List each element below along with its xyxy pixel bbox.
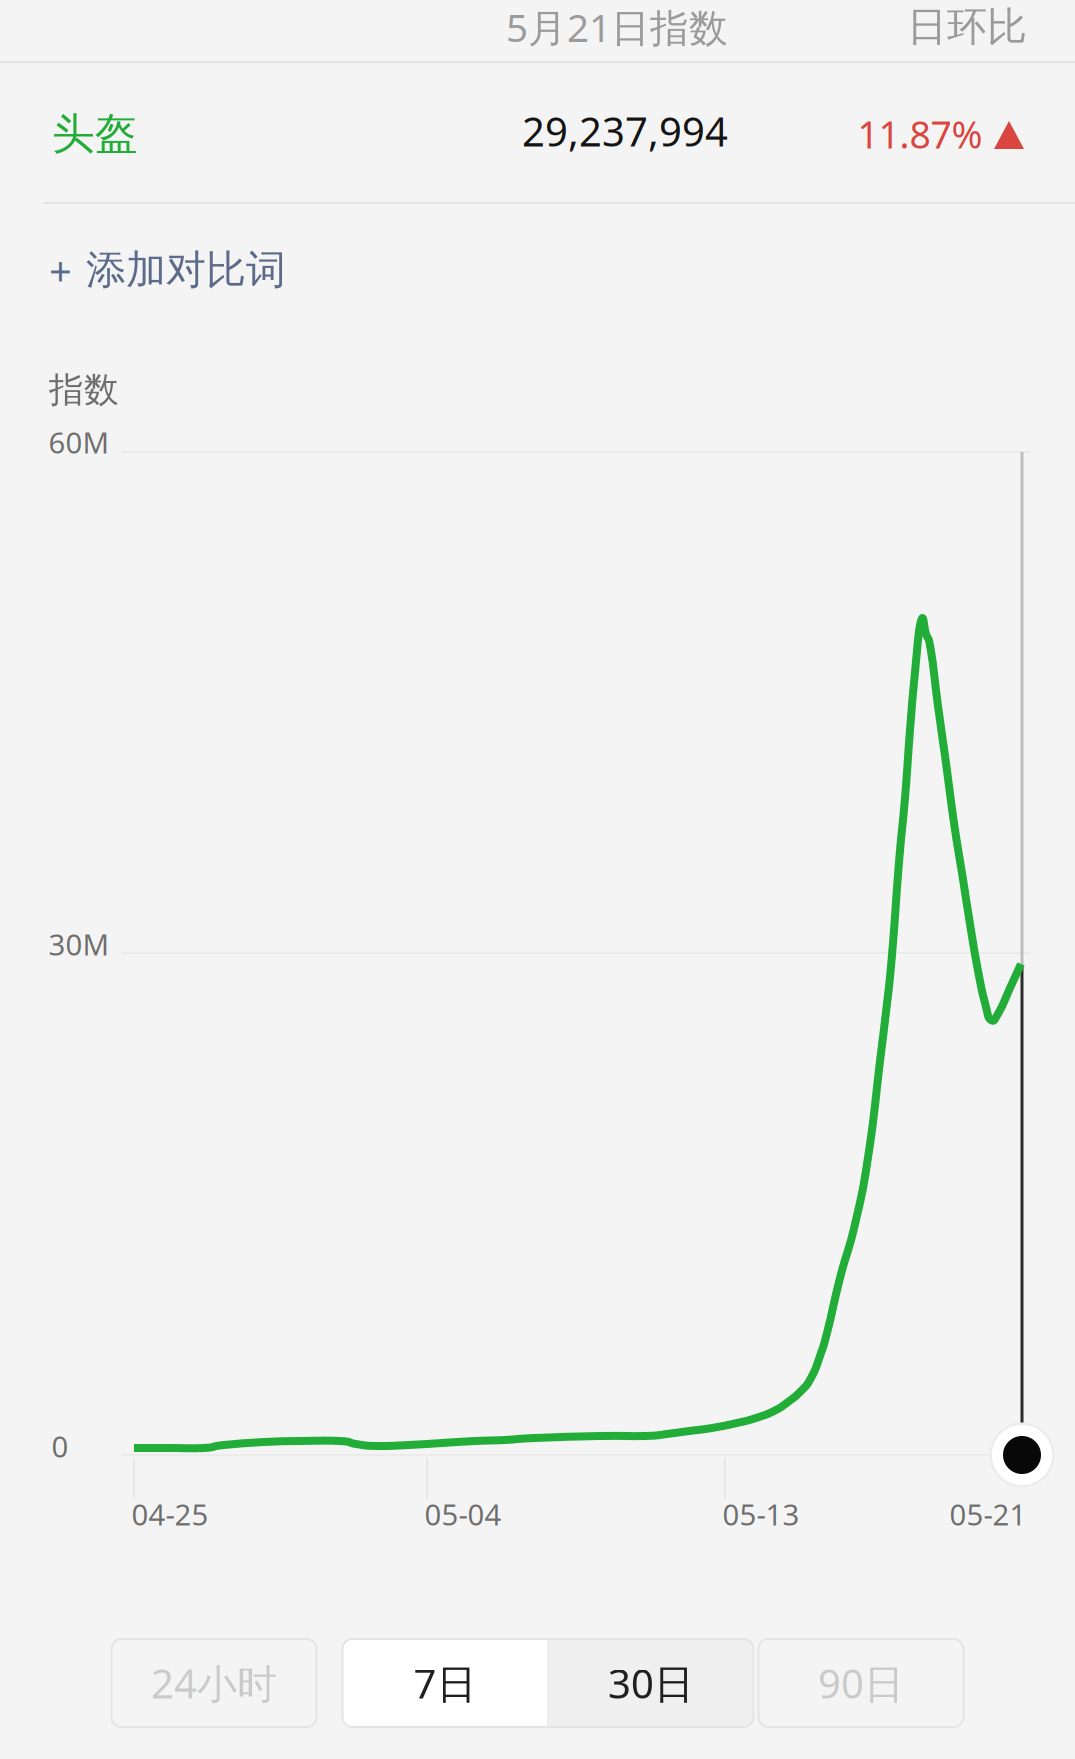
staticText: 05-04 — [424, 1494, 501, 1533]
staticText: 指数 — [49, 369, 119, 411]
staticText: 05-21 — [949, 1494, 1026, 1533]
staticText: 7日 — [413, 1656, 476, 1709]
staticText: 90日 — [818, 1656, 904, 1709]
staticText: 日环比 — [907, 2, 1027, 51]
button[interactable]: 头盔 — [52, 69, 252, 199]
staticText: 30日 — [608, 1656, 694, 1709]
button[interactable]: 30日 — [548, 1639, 753, 1727]
button[interactable]: 7日 — [342, 1639, 547, 1727]
staticText: 05-13 — [722, 1494, 799, 1533]
staticText: 5月21日指数 — [506, 1, 728, 53]
staticText: 添加对比词 — [86, 245, 286, 294]
staticText: 0 — [51, 1426, 68, 1465]
button[interactable]: 90日 — [758, 1639, 963, 1727]
staticText: 头盔 — [52, 108, 138, 160]
staticText: 04-25 — [131, 1494, 208, 1533]
staticText: 29,237,994 — [522, 104, 728, 157]
staticText: 24小时 — [151, 1656, 277, 1709]
staticText: 30M — [48, 924, 109, 963]
staticText: + — [49, 243, 72, 296]
staticText: 60M — [48, 422, 109, 461]
button[interactable]: + — [49, 215, 349, 325]
staticText: 11.87% — [857, 109, 982, 159]
button[interactable]: 24小时 — [111, 1639, 316, 1727]
